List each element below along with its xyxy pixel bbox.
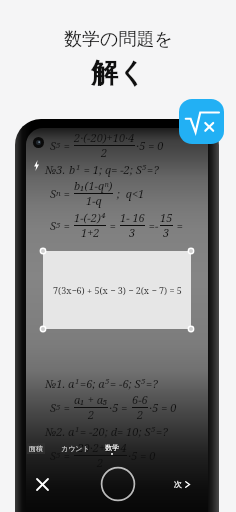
staticText: −20·2+10·4 (74, 440, 127, 455)
staticText: 6−6 (132, 392, 148, 407)
staticText: = (107, 218, 119, 233)
staticText: a₁ + a₅ (74, 392, 108, 407)
staticText: ; q<1 (114, 186, 145, 201)
button[interactable]: Close (30, 472, 54, 496)
staticText: ·5 = (109, 400, 131, 415)
staticText: 5 (56, 220, 61, 231)
staticText: 5 (56, 402, 61, 413)
staticText: 5 (105, 376, 110, 387)
staticText: S (50, 448, 56, 463)
staticText: 1 (76, 162, 81, 173)
staticText: = (61, 186, 73, 201)
staticText: = −20; d= 10; S (80, 424, 151, 439)
staticText: 7(3x−6) + 5(x − 3) − 2(x − 7) = 5 (53, 284, 182, 296)
staticText: = (174, 218, 184, 233)
staticText: 2 (137, 407, 144, 422)
staticText: = 1; q= −2; S (81, 162, 142, 177)
staticText: 5 (56, 140, 61, 151)
staticText: 数学の問題を (64, 28, 173, 51)
staticText: 1−q (86, 193, 102, 208)
staticText: 解く (91, 56, 146, 90)
staticText: 5 (141, 376, 146, 387)
staticText: 1+2 (81, 225, 100, 240)
staticText: n (56, 188, 61, 199)
staticText: 3 (129, 225, 136, 240)
staticText: = (61, 400, 73, 415)
staticText: S (50, 138, 56, 153)
staticText: №2. a (45, 424, 75, 439)
staticText: 5 (56, 450, 61, 461)
staticText: №3. (45, 162, 69, 177)
staticText: 5 (151, 424, 156, 435)
staticText: b (69, 162, 76, 177)
staticText: 1 (75, 424, 80, 435)
button[interactable]: カウント (59, 442, 92, 455)
button[interactable]: Shutter (100, 466, 136, 502)
staticText: =? (146, 376, 158, 391)
staticText: =6; a (80, 376, 105, 391)
staticText: =? (147, 162, 159, 177)
staticText: = (61, 138, 73, 153)
staticText: 1− 16 (120, 210, 145, 225)
staticText: = (61, 448, 73, 463)
staticText: 2·(−20)+10·4 (74, 130, 135, 145)
staticText: №1. a (45, 376, 75, 391)
button[interactable]: Math solver app icon (179, 99, 224, 144)
staticText: 次 (174, 479, 182, 489)
staticText: 5 (142, 162, 147, 173)
staticText: 数学 (105, 443, 119, 452)
staticText: ·5 = 0 (149, 400, 177, 415)
button[interactable]: 面積 (27, 443, 45, 454)
staticText: ·5 = 0 (136, 138, 164, 153)
staticText: S (50, 218, 56, 233)
staticText: 面積 (29, 444, 43, 453)
staticText: =? (156, 424, 168, 439)
staticText: 3 (163, 225, 170, 240)
staticText: b₁(1−qⁿ) (74, 178, 113, 193)
staticText: 15 (160, 210, 173, 225)
button[interactable]: 次 (174, 472, 191, 496)
staticText: S (50, 400, 56, 415)
staticText: 2 (101, 145, 108, 160)
staticText: ·5 = 0 (128, 448, 156, 463)
staticText: カウント (61, 444, 90, 453)
staticText: 1−(−2)⁴ (74, 210, 106, 225)
staticText: = (61, 218, 73, 233)
staticText: 1 (75, 376, 80, 387)
button[interactable]: 数学 (103, 443, 121, 455)
staticText: 2 (97, 455, 104, 470)
staticText: 2 (88, 407, 95, 422)
staticText: S (50, 186, 56, 201)
staticText: = −6; S (110, 376, 141, 391)
staticText: =− (146, 218, 159, 233)
